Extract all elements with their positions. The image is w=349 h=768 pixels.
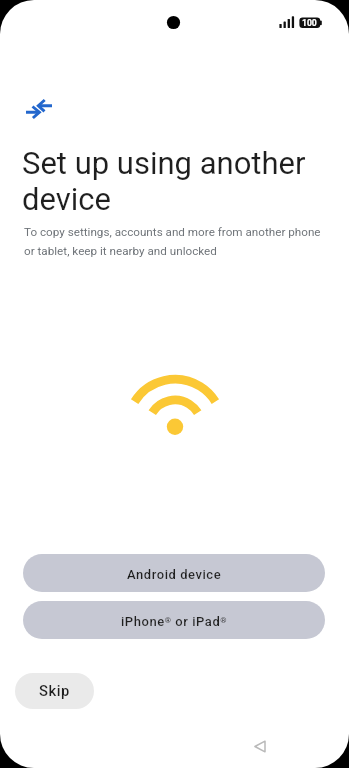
staticText: Android device <box>127 567 222 582</box>
button[interactable]: Android device <box>23 554 325 592</box>
staticText: iPhone® or iPad® <box>121 614 228 629</box>
button[interactable]: Back <box>242 729 278 764</box>
staticText: 100 <box>302 18 317 28</box>
staticText: To copy settings, accounts and more from… <box>24 225 327 258</box>
staticText: Set up using another device <box>22 145 325 218</box>
staticText: Skip <box>39 682 70 699</box>
button[interactable]: iPhone® or iPad® <box>23 601 325 639</box>
button[interactable]: Skip <box>15 673 94 709</box>
